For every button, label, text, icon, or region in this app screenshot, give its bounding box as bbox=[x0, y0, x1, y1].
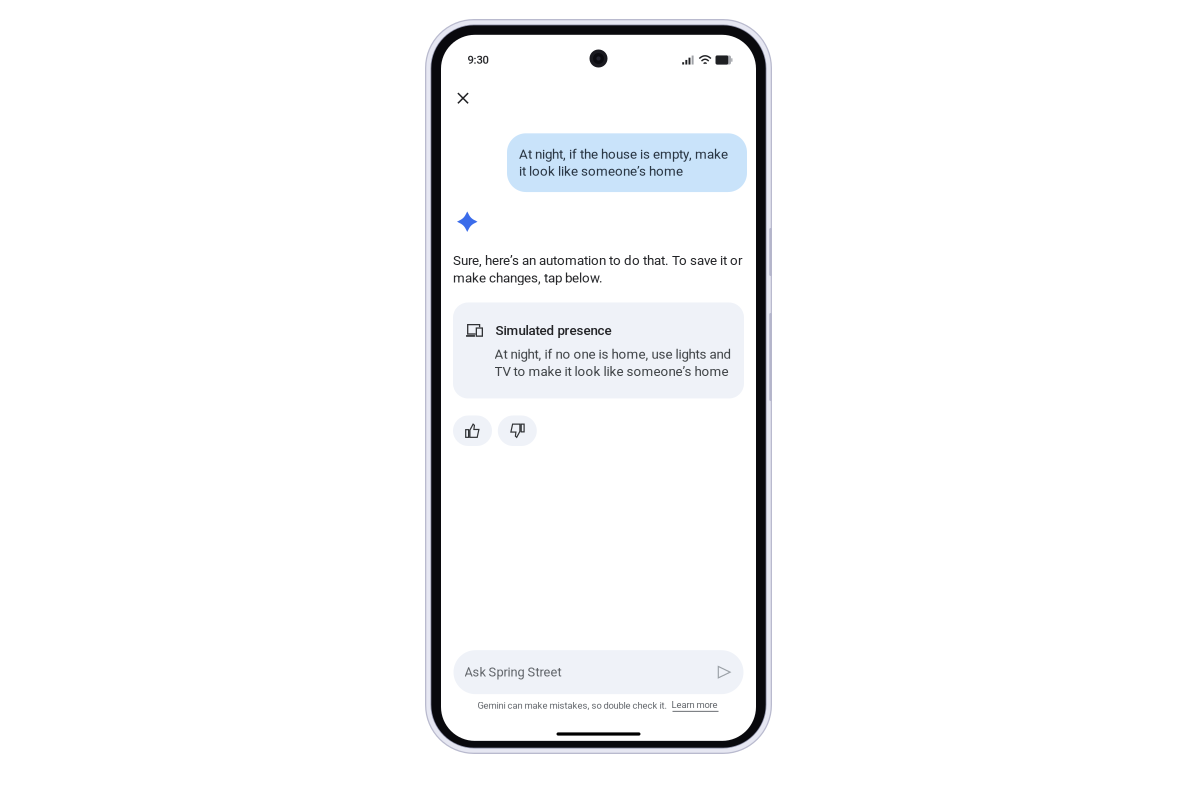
staticText: At night, if the house is empty, make it… bbox=[519, 146, 728, 179]
button[interactable]: Bad response bbox=[498, 415, 537, 446]
staticText: Ask Spring Street bbox=[464, 665, 561, 680]
button[interactable]: Learn more bbox=[671, 699, 719, 712]
button[interactable]: Good response bbox=[453, 415, 492, 446]
staticText: Gemini can make mistakes, so double chec… bbox=[477, 700, 666, 711]
staticText: 9:30 bbox=[467, 53, 488, 66]
button[interactable]: Simulated presence bbox=[453, 302, 744, 398]
staticText: Learn more bbox=[671, 699, 717, 710]
staticText: Sure, here’s an automation to do that. T… bbox=[453, 253, 743, 286]
button[interactable]: Ask Spring Street bbox=[453, 650, 743, 694]
button[interactable]: Close bbox=[452, 87, 474, 109]
staticText: At night, if no one is home, use lights … bbox=[494, 346, 731, 379]
staticText: Simulated presence bbox=[495, 323, 611, 338]
